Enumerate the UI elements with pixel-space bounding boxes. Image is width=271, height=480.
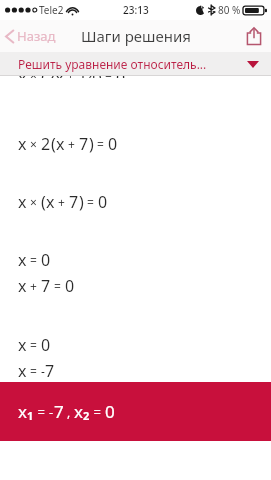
staticText: x — [56, 133, 65, 155]
staticText: × — [27, 136, 41, 152]
staticText: ( — [51, 133, 56, 155]
staticText: 0 — [41, 249, 51, 271]
staticText: 0 — [105, 400, 115, 423]
staticText: Tele2 — [39, 3, 64, 17]
staticText: 0 — [65, 275, 75, 297]
staticText: 0 — [116, 76, 126, 78]
staticText: x — [18, 400, 27, 423]
staticText: × — [27, 194, 41, 210]
staticText: 7 — [69, 191, 79, 213]
staticText: x — [18, 133, 27, 155]
staticText: 7 — [45, 360, 55, 382]
staticText: + — [55, 194, 69, 210]
staticText: x — [18, 360, 27, 382]
staticText: 7 — [54, 400, 64, 423]
staticText: , — [64, 404, 74, 420]
staticText: + — [27, 278, 41, 294]
staticText: x — [18, 191, 27, 213]
staticText: Решить уравнение относитель... — [18, 56, 207, 72]
button[interactable]: Share — [237, 20, 271, 52]
staticText: 7 — [41, 275, 51, 297]
staticText: 2 — [41, 133, 51, 155]
staticText: = — [51, 278, 65, 294]
staticText: x — [46, 191, 55, 213]
staticText: = — [27, 252, 41, 268]
staticText: Шаги решения — [81, 26, 191, 46]
staticText: 0 — [108, 133, 118, 155]
staticText: x — [18, 76, 27, 78]
staticText: + — [65, 136, 79, 152]
staticText: = — [84, 194, 98, 210]
staticText: × — [27, 76, 41, 78]
staticText: 1 — [27, 408, 34, 423]
staticText: 23:13 — [123, 3, 149, 17]
staticText: x — [74, 400, 83, 423]
staticText: ) — [79, 191, 84, 213]
staticText: ( — [41, 76, 46, 78]
staticText: 14 — [78, 76, 97, 78]
staticText: ) — [97, 76, 102, 78]
staticText: - — [41, 363, 45, 379]
staticText: = — [90, 403, 105, 421]
staticText: 0 — [98, 191, 108, 213]
staticText: x — [18, 249, 27, 271]
staticText: = — [27, 363, 41, 379]
staticText: = — [94, 136, 108, 152]
staticText: Назад — [17, 27, 56, 45]
staticText: 80 % — [218, 3, 241, 17]
staticText: 2x — [46, 76, 64, 78]
staticText: - — [49, 403, 54, 421]
staticText: + — [64, 76, 78, 78]
staticText: = — [102, 76, 116, 78]
staticText: ) — [89, 133, 94, 155]
staticText: = — [27, 337, 41, 353]
staticText: ( — [41, 191, 46, 213]
staticText: 2 — [83, 408, 90, 423]
staticText: = — [34, 403, 49, 421]
staticText: 0 — [41, 334, 51, 356]
button[interactable]: Назад — [0, 20, 62, 52]
staticText: x — [18, 334, 27, 356]
staticText: x — [18, 275, 27, 297]
staticText: 7 — [79, 133, 89, 155]
button[interactable]: Решить уравнение относитель... — [0, 52, 271, 76]
